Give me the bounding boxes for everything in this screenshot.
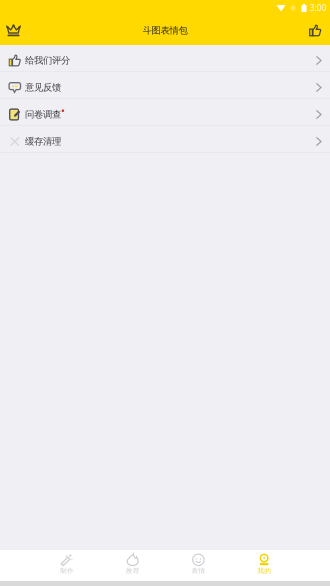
button[interactable]: 我的 (231, 549, 297, 582)
staticText: 问卷调查 (25, 109, 61, 120)
staticText: 制作 (60, 567, 74, 575)
button[interactable]: 问卷调查 (0, 99, 330, 126)
staticText: 我的 (257, 567, 271, 575)
button[interactable]: 推荐 (100, 549, 166, 582)
button[interactable]: 缓存清理 (0, 126, 330, 153)
staticText: 意见反馈 (25, 82, 61, 93)
staticText: 缓存清理 (25, 136, 61, 147)
button[interactable]: 给我们评分 (0, 45, 330, 72)
staticText: 斗图表情包 (142, 25, 187, 36)
staticText: 3:00 (310, 3, 327, 13)
button[interactable]: 意见反馈 (0, 72, 330, 99)
staticText: 表情 (191, 567, 205, 575)
button[interactable]: Like (299, 16, 330, 45)
staticText: 给我们评分 (25, 55, 70, 66)
button[interactable]: 制作 (34, 549, 100, 582)
button[interactable]: 表情 (165, 549, 231, 582)
button[interactable]: VIP (0, 16, 30, 45)
staticText: 推荐 (126, 567, 140, 575)
